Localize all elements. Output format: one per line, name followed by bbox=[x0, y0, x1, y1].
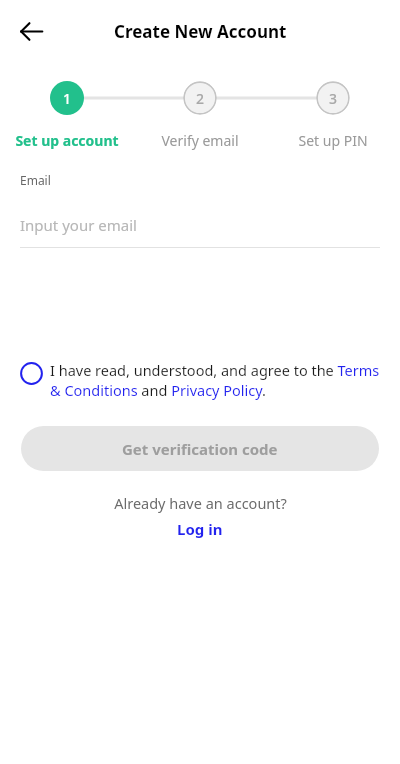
button[interactable]: Back bbox=[9, 9, 53, 53]
staticText: Log in bbox=[177, 519, 223, 539]
button[interactable]: 1 bbox=[50, 81, 84, 115]
button[interactable]: Log in bbox=[169, 518, 231, 540]
staticText: Get verification code bbox=[122, 439, 278, 459]
staticText: 1 bbox=[63, 89, 72, 108]
staticText: I have read, understood, and agree to th… bbox=[50, 360, 382, 401]
staticText: Create New Account bbox=[114, 20, 287, 43]
button[interactable]: I have read, understood, and agree to th… bbox=[20, 360, 382, 401]
button[interactable]: Get verification code bbox=[21, 426, 379, 471]
staticText: 2 bbox=[196, 89, 205, 108]
staticText: Set up account bbox=[15, 131, 119, 150]
staticText: 3 bbox=[329, 89, 338, 108]
button[interactable]: Input your email bbox=[20, 213, 380, 237]
staticText: Verify email bbox=[161, 131, 239, 150]
staticText: Email bbox=[20, 172, 51, 188]
staticText: Already have an account? bbox=[114, 493, 287, 513]
staticText: Input your email bbox=[20, 215, 137, 235]
button[interactable]: 2 bbox=[183, 81, 217, 115]
staticText: Set up PIN bbox=[298, 131, 368, 150]
button[interactable]: 3 bbox=[316, 81, 350, 115]
